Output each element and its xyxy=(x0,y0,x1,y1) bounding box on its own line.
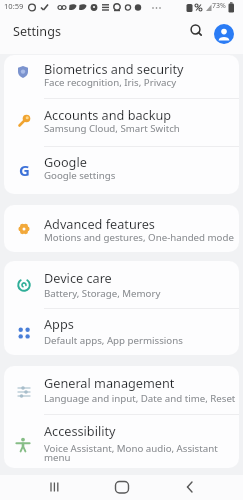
staticText: Samsung Cloud, Smart Switch xyxy=(44,122,180,135)
staticText: Accessibility xyxy=(44,422,116,439)
button[interactable]: Device care xyxy=(4,261,239,308)
button[interactable]: Apps xyxy=(4,308,239,355)
staticText: Biometrics and security xyxy=(44,60,184,77)
staticText: G xyxy=(19,160,30,180)
button[interactable]: Advanced features xyxy=(4,205,239,252)
staticText: 10:59 xyxy=(4,1,24,11)
button[interactable]: General management xyxy=(4,366,239,413)
button[interactable]: Biometrics and security xyxy=(4,55,239,101)
staticText: Device care xyxy=(44,269,112,286)
staticText: Settings xyxy=(13,23,61,40)
staticText: Motions and gestures, One-handed mode xyxy=(44,231,234,244)
staticText: Voice Assistant, Mono audio, Assistant xyxy=(44,442,218,455)
staticText: menu xyxy=(44,451,71,464)
button[interactable] xyxy=(214,24,234,44)
button[interactable] xyxy=(179,477,201,497)
button[interactable]: Accessibility xyxy=(4,413,239,468)
staticText: Advanced features xyxy=(44,215,155,232)
staticText: Google settings xyxy=(44,169,116,182)
staticText: Apps xyxy=(44,315,74,332)
staticText: General management xyxy=(44,374,175,391)
staticText: Default apps, App permissions xyxy=(44,334,183,347)
button[interactable] xyxy=(188,23,206,41)
button[interactable] xyxy=(44,477,66,497)
staticText: Language and input, Date and time, Reset xyxy=(44,392,236,405)
staticText: Face recognition, Iris, Privacy xyxy=(44,76,177,89)
staticText: Google xyxy=(44,153,87,170)
button[interactable] xyxy=(111,477,133,497)
button[interactable]: Accounts and backup xyxy=(4,101,239,147)
staticText: 73% xyxy=(212,1,226,11)
staticText: Battery, Storage, Memory xyxy=(44,287,161,300)
staticText: Accounts and backup xyxy=(44,106,172,123)
button[interactable]: Google xyxy=(4,148,239,194)
